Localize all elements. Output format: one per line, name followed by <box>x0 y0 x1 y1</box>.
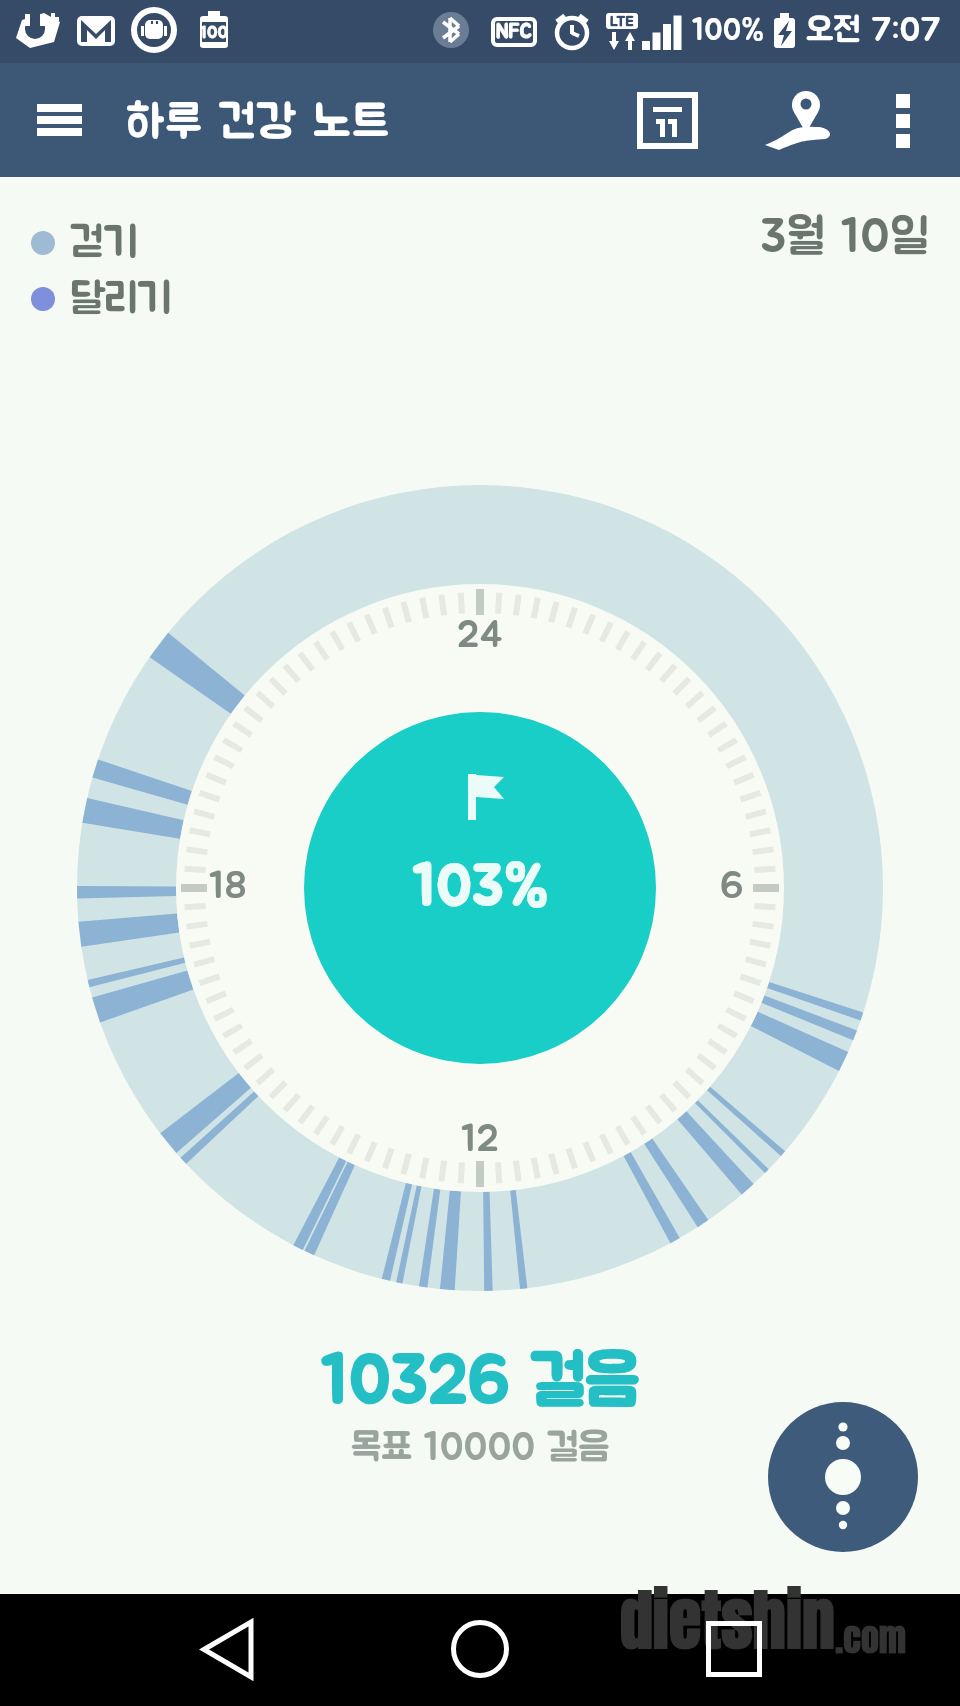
staticText: 걷기 <box>70 222 139 264</box>
staticText: NFC <box>496 22 532 42</box>
button[interactable]: Menu <box>0 63 119 177</box>
staticText: 3월 10일 <box>760 214 930 262</box>
button[interactable]: Route <box>742 67 852 173</box>
staticText: 100 <box>200 24 228 41</box>
button[interactable]: Home <box>405 1599 555 1699</box>
staticText: .com <box>835 1611 907 1665</box>
button[interactable]: Add entry <box>768 1402 918 1552</box>
staticText: 12 <box>461 1121 499 1159</box>
button[interactable]: 달리기 <box>31 271 351 327</box>
button[interactable]: Calendar <box>612 70 722 170</box>
staticText: LTE <box>610 14 634 29</box>
staticText: dietshin <box>620 1570 835 1669</box>
button[interactable]: More options <box>862 69 944 171</box>
staticText: 목표 10000 걸음 <box>351 1429 610 1468</box>
staticText: 오전 7:07 <box>806 14 941 48</box>
staticText: 103% <box>412 859 549 917</box>
staticText: 6 <box>720 868 744 906</box>
staticText: 18 <box>209 868 247 906</box>
staticText: 24 <box>457 617 504 655</box>
staticText: 달리기 <box>70 278 173 320</box>
staticText: 100% <box>692 16 765 46</box>
staticText: 하루 건강 노트 <box>126 100 391 146</box>
staticText: 10326 걸음 <box>321 1349 640 1417</box>
button[interactable]: Back <box>152 1599 302 1699</box>
button[interactable]: 걷기 <box>31 215 351 271</box>
button[interactable]: Recents <box>659 1599 809 1699</box>
